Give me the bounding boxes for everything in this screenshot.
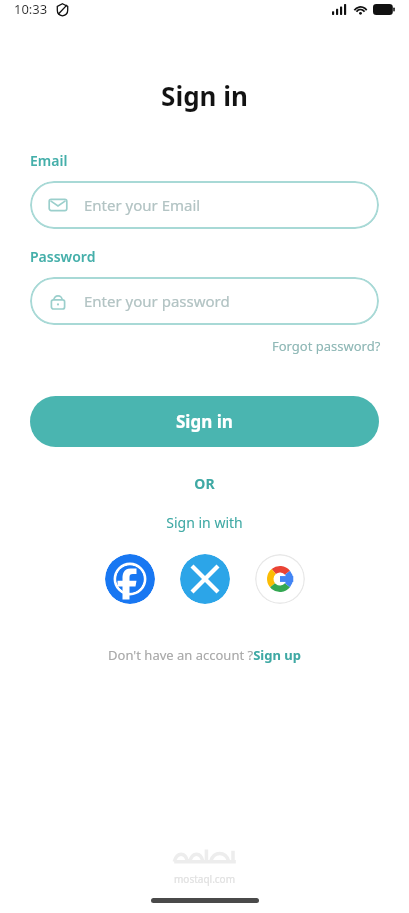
button[interactable]: Sign in (30, 396, 379, 447)
staticText: Don't have an account ?Sign up (108, 646, 301, 664)
staticText: Password (30, 247, 96, 266)
staticText: Forgot password? (272, 337, 381, 355)
staticText: Sign in (0, 78, 409, 113)
button[interactable]: Enter your Email (30, 181, 379, 229)
button[interactable]: Don't have an account ?Sign up (102, 642, 307, 668)
button[interactable]: Sign in with Google (255, 554, 305, 604)
staticText: mostaql.com (174, 872, 236, 886)
staticText: OR (0, 474, 409, 493)
staticText: Enter your password (84, 291, 230, 311)
staticText: Email (30, 151, 68, 170)
staticText: Sign in (176, 410, 233, 433)
button[interactable]: Sign in with Facebook (105, 554, 155, 604)
button[interactable]: Sign in with X (180, 554, 230, 604)
button[interactable]: Forgot password? (270, 334, 383, 358)
staticText: Enter your Email (84, 195, 201, 215)
button[interactable]: Enter your password (30, 277, 379, 325)
staticText: Sign in with (0, 513, 409, 532)
staticText: 10:33 (14, 0, 48, 18)
